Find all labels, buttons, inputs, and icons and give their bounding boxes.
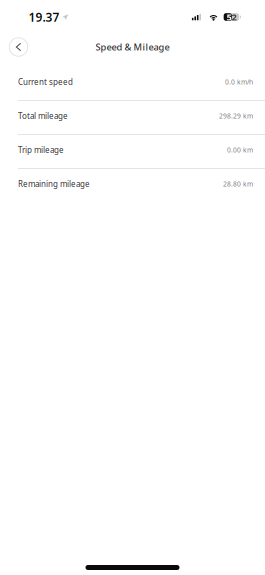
staticText: Total mileage — [18, 111, 68, 121]
staticText: 298.29 km — [219, 112, 253, 120]
button[interactable]: Remaining mileage — [0, 169, 265, 203]
staticText: 28.80 km — [223, 180, 253, 188]
button[interactable]: Current speed — [0, 67, 265, 101]
staticText: 0.00 km — [227, 146, 253, 154]
button[interactable]: Total mileage — [0, 101, 265, 135]
staticText: Trip mileage — [18, 145, 64, 155]
button[interactable]: Trip mileage — [0, 135, 265, 169]
button[interactable]: Back — [5, 34, 31, 60]
staticText: Speed & Mileage — [95, 41, 169, 53]
staticText: 52 — [226, 11, 236, 23]
staticText: Remaining mileage — [18, 179, 90, 189]
staticText: 52 — [226, 11, 236, 23]
staticText: Current speed — [18, 77, 73, 87]
staticText: 19.37 — [28, 9, 59, 25]
staticText: 0.0 km/h — [225, 78, 253, 86]
